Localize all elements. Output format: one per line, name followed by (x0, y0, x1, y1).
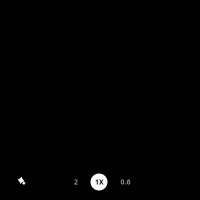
button[interactable]: 1X (90, 173, 107, 190)
staticText: 0.6 (120, 178, 130, 186)
button[interactable]: Photographic Styles (10, 169, 36, 195)
button[interactable]: 2 (66, 172, 86, 192)
staticText: 1X (95, 178, 103, 186)
button[interactable]: 0.6 (115, 172, 135, 192)
staticText: 2 (74, 178, 78, 186)
